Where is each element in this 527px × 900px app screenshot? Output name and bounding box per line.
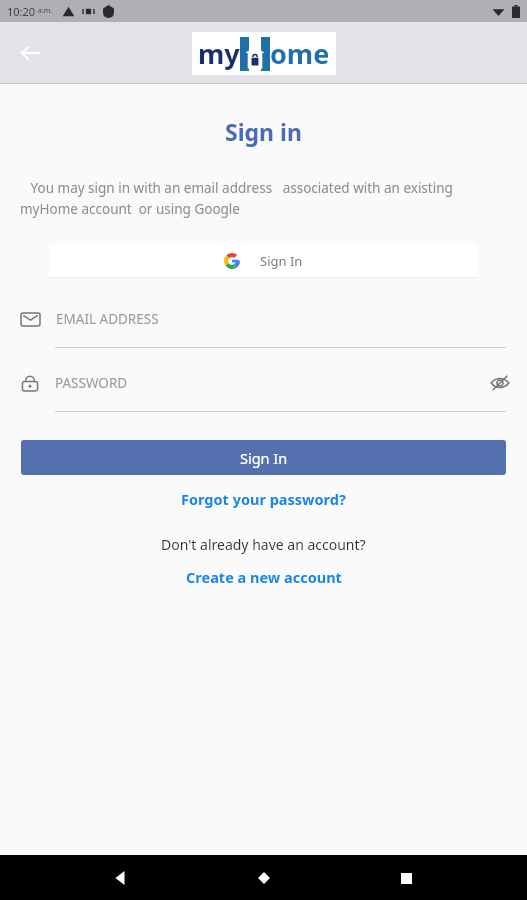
- button[interactable]: Show password: [483, 368, 517, 398]
- button[interactable]: Home: [242, 856, 286, 900]
- button[interactable]: Recent apps: [384, 856, 428, 900]
- button[interactable]: Back: [8, 31, 52, 75]
- staticText: ome: [270, 35, 330, 72]
- staticText: my: [198, 35, 240, 72]
- staticText: Sign in: [225, 116, 302, 147]
- staticText: a.m.: [38, 6, 53, 16]
- staticText: EMAIL ADDRESS: [56, 310, 159, 328]
- button[interactable]: Sign In: [21, 440, 506, 475]
- staticText: Sign In: [240, 448, 288, 468]
- staticText: You may sign in with an email address as…: [20, 179, 507, 218]
- button[interactable]: PASSWORD: [0, 368, 527, 398]
- button[interactable]: Create a new account: [0, 567, 527, 587]
- button[interactable]: Back: [99, 856, 143, 900]
- staticText: PASSWORD: [55, 374, 128, 392]
- staticText: Don't already have an account?: [161, 535, 366, 554]
- button[interactable]: Forgot your password?: [0, 489, 527, 509]
- staticText: 10:20: [7, 4, 36, 19]
- staticText: Forgot your password?: [181, 489, 346, 509]
- button[interactable]: EMAIL ADDRESS: [0, 304, 527, 334]
- staticText: Create a new account: [186, 567, 342, 587]
- button[interactable]: Sign In: [49, 244, 478, 278]
- staticText: Sign In: [260, 252, 303, 270]
